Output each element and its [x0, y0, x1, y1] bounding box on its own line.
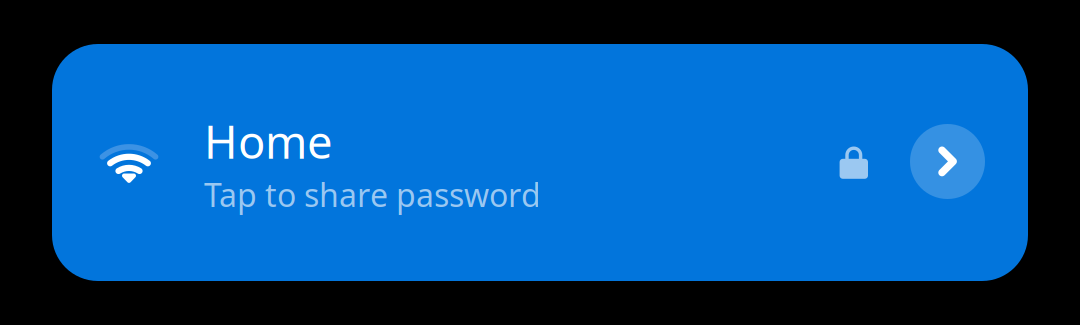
button[interactable]: Home, Tap to share password: [52, 44, 1028, 281]
staticText: Tap to share password: [204, 173, 541, 216]
button[interactable]: Share password: [910, 125, 985, 200]
staticText: Home: [204, 111, 333, 171]
